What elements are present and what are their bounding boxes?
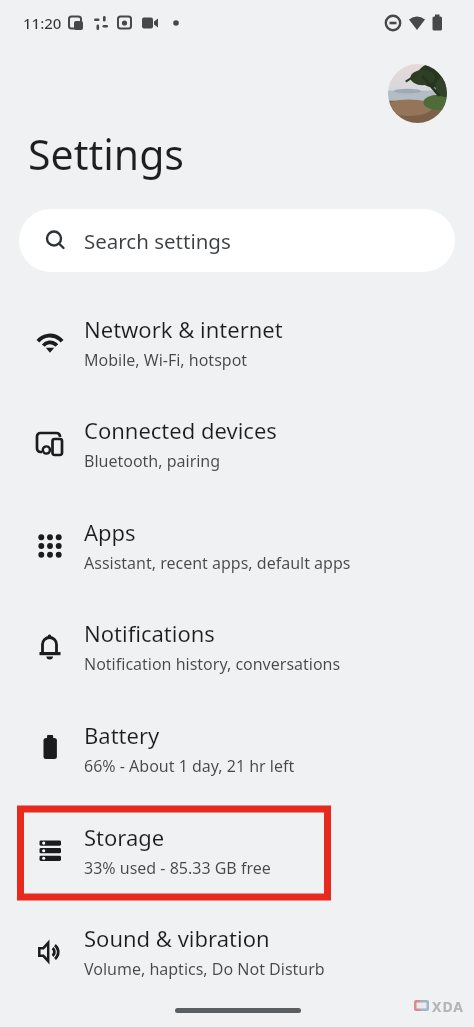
button[interactable]: Apps: [0, 495, 474, 596]
staticText: Notifications: [84, 618, 215, 648]
staticText: Network & internet: [84, 314, 283, 344]
button[interactable]: Network & internet: [0, 292, 474, 393]
button[interactable]: Sound & vibration: [0, 901, 474, 1002]
staticText: Volume, haptics, Do Not Disturb: [84, 958, 325, 980]
staticText: Bluetooth, pairing: [84, 450, 221, 472]
button[interactable]: [388, 64, 447, 123]
staticText: Battery: [84, 720, 160, 750]
button[interactable]: Battery: [0, 698, 474, 799]
button[interactable]: Search settings: [19, 209, 455, 272]
staticText: Settings: [28, 126, 185, 182]
button[interactable]: Storage: [0, 800, 474, 901]
staticText: XDA: [432, 997, 465, 1016]
staticText: Notification history, conversations: [84, 653, 341, 675]
button[interactable]: Notifications: [0, 596, 474, 697]
staticText: Assistant, recent apps, default apps: [84, 552, 351, 574]
staticText: Storage: [84, 822, 165, 852]
button[interactable]: Connected devices: [0, 393, 474, 494]
staticText: 66% - About 1 day, 21 hr left: [84, 755, 295, 777]
staticText: 11:20: [23, 13, 62, 33]
staticText: Mobile, Wi-Fi, hotspot: [84, 349, 248, 371]
staticText: Connected devices: [84, 415, 277, 445]
staticText: Sound & vibration: [84, 923, 270, 953]
staticText: Apps: [84, 517, 136, 547]
staticText: Search settings: [84, 227, 231, 255]
staticText: 33% used - 85.33 GB free: [84, 857, 271, 879]
